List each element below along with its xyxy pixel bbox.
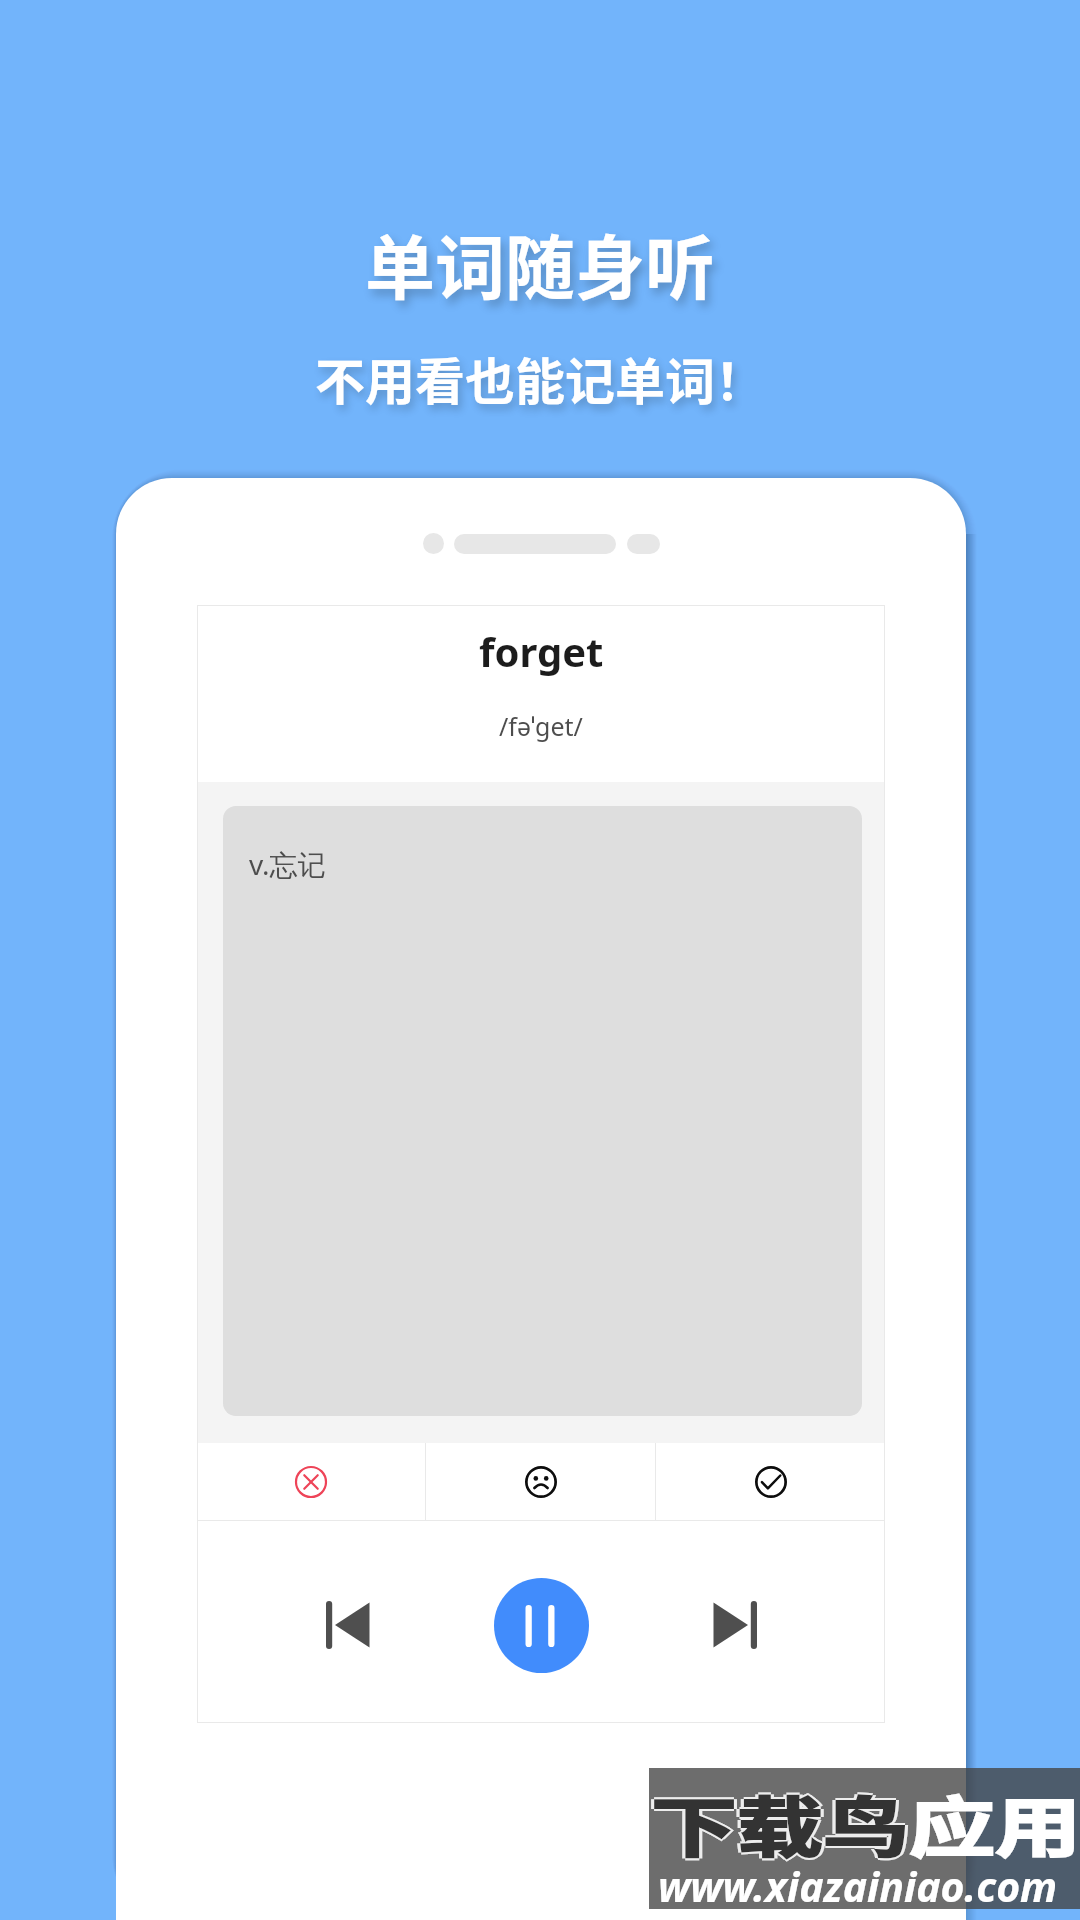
button[interactable]: Vague: [426, 1443, 655, 1520]
button[interactable]: Next word: [680, 1570, 790, 1680]
button[interactable]: Known: [656, 1443, 885, 1520]
button[interactable]: Pause: [494, 1578, 589, 1673]
staticText: 不用看也能记单词！: [315, 342, 765, 414]
staticText: 下载鸟: [648, 1776, 906, 1870]
staticText: v.忘记: [249, 845, 326, 883]
button[interactable]: Previous word: [293, 1570, 403, 1680]
staticText: forget: [479, 624, 604, 678]
button[interactable]: v.忘记: [223, 806, 862, 1416]
button[interactable]: Forgot: [197, 1443, 425, 1520]
staticText: 单词随身听: [365, 213, 715, 314]
staticText: 下载鸟: [651, 1778, 909, 1872]
staticText: 下载鸟: [654, 1776, 912, 1870]
staticText: 下载鸟: [651, 1776, 909, 1870]
staticText: /fəˈget/: [499, 709, 583, 743]
staticText: www.xiazainiao.com: [658, 1858, 1058, 1914]
staticText: 应用: [909, 1776, 1080, 1870]
staticText: 下载鸟: [651, 1773, 909, 1868]
